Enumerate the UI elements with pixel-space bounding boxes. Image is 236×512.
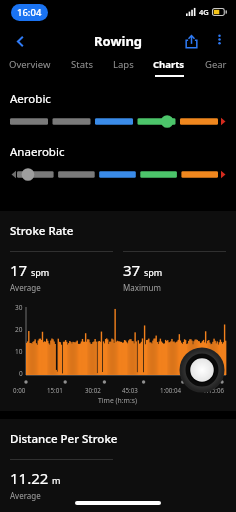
staticText: Overview <box>9 58 51 71</box>
staticText: spm <box>31 266 50 278</box>
staticText: Maximum <box>123 282 161 293</box>
button[interactable]: Back <box>3 24 37 58</box>
staticText: 1:00:04 <box>160 386 182 394</box>
staticText: Stroke Rate <box>10 223 74 239</box>
staticText: Aerobic <box>10 91 51 107</box>
staticText: Stats <box>71 58 93 71</box>
staticText: 20 <box>15 325 23 334</box>
staticText: 0 <box>19 369 23 378</box>
staticText: Average <box>10 282 41 293</box>
staticText: Anaerobic <box>10 144 65 160</box>
staticText: spm <box>144 266 163 278</box>
staticText: Average <box>10 490 41 501</box>
staticText: Gear <box>205 58 227 71</box>
staticText: 15:01 <box>47 386 63 394</box>
button[interactable]: Zoom lens <box>181 349 223 391</box>
button[interactable]: Overview <box>5 58 55 77</box>
button[interactable]: Gear <box>201 58 231 77</box>
staticText: 11.22 <box>10 468 49 488</box>
staticText: Distance Per Stroke <box>10 431 118 447</box>
staticText: 16:04 <box>17 6 42 19</box>
staticText: 17 <box>10 260 28 280</box>
staticText: 1:15:06 <box>203 386 225 394</box>
staticText: 30:02 <box>85 386 101 394</box>
staticText: 10 <box>15 347 23 356</box>
button[interactable]: Share <box>176 26 206 56</box>
button[interactable]: More options <box>206 26 232 52</box>
staticText: Laps <box>113 58 134 71</box>
staticText: 4G <box>199 7 209 17</box>
button[interactable]: Laps <box>109 58 138 77</box>
button[interactable]: Charts <box>149 58 189 77</box>
staticText: 30 <box>15 303 23 312</box>
staticText: 0:00 <box>13 386 26 394</box>
staticText: Time (h:m:s) <box>98 396 138 405</box>
button[interactable]: Distance Per Stroke <box>0 419 236 512</box>
staticText: 45:03 <box>122 386 138 394</box>
button[interactable]: Stroke Rate <box>0 211 236 411</box>
staticText: Rowing <box>94 32 143 50</box>
staticText: m <box>52 474 61 486</box>
staticText: Charts <box>153 58 185 71</box>
button[interactable]: Stats <box>67 58 97 77</box>
staticText: 37 <box>123 260 141 280</box>
